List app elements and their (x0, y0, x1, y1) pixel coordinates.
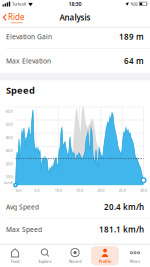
staticText: km/h (4, 180, 13, 185)
staticText: Profile (99, 259, 111, 264)
button[interactable]: Explore (30, 244, 60, 267)
staticText: 15.0 (76, 187, 83, 193)
button[interactable]: More (120, 244, 150, 267)
staticText: 50.0 (5, 122, 12, 127)
staticText: 189 m (119, 31, 144, 42)
staticText: 20.4 km/h (104, 201, 144, 212)
staticText: Elevation Gain (6, 32, 52, 41)
staticText: 40.0 (5, 135, 12, 140)
staticText: 5.0 (34, 187, 39, 193)
staticText: Ride (8, 12, 25, 22)
staticText: More (130, 259, 140, 264)
staticText: 64 m (124, 56, 144, 66)
staticText: 30.0 (140, 187, 147, 193)
staticText: Max Elevation (6, 56, 51, 65)
staticText: Max Speed (6, 225, 42, 234)
button[interactable]: Profile (90, 244, 120, 267)
staticText: Speed (6, 84, 35, 96)
staticText: Turkcell (12, 1, 26, 7)
staticText: 20.0 (97, 187, 104, 193)
staticText: %32 (130, 1, 137, 7)
staticText: Analysis (59, 12, 90, 23)
button[interactable]: Ride (0, 12, 25, 23)
staticText: 60.0 (5, 108, 12, 114)
staticText: 181.1 km/h (99, 224, 144, 235)
staticText: 18:30 (68, 0, 81, 8)
staticText: Avg Speed (6, 202, 39, 211)
staticText: 10.0 (55, 187, 62, 193)
staticText: 30.0 (5, 148, 12, 153)
button[interactable]: Feed (0, 244, 30, 267)
staticText: 20.0 (5, 161, 12, 166)
staticText: Feed (11, 259, 19, 264)
staticText: 10.0 (5, 174, 12, 179)
staticText: km (16, 187, 22, 193)
staticText: Explore (38, 259, 51, 264)
staticText: 25.0 (119, 187, 126, 193)
staticText: Record (69, 259, 81, 264)
button[interactable]: Record (60, 244, 90, 267)
